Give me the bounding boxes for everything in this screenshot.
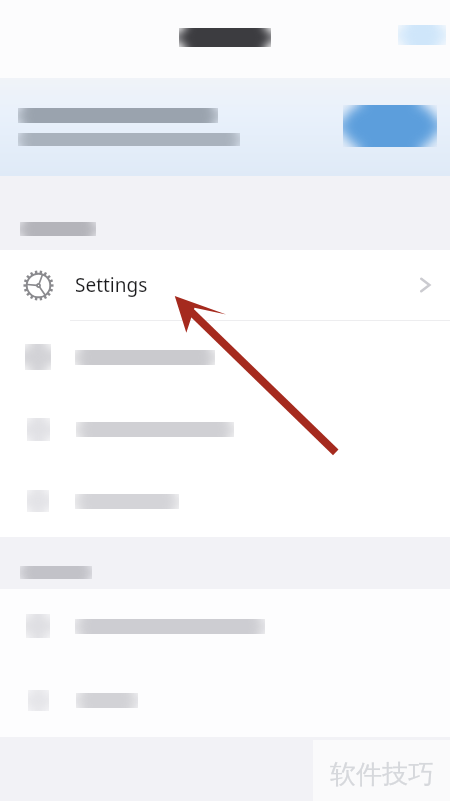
staticText: Settings (75, 272, 148, 298)
button[interactable] (0, 321, 450, 393)
button[interactable] (0, 465, 450, 537)
button[interactable] (0, 663, 450, 737)
button[interactable] (398, 25, 446, 45)
button[interactable] (0, 589, 450, 663)
button[interactable] (0, 393, 450, 465)
staticText: 软件技巧 (330, 758, 434, 791)
button[interactable] (343, 105, 437, 147)
button[interactable]: Settings (0, 250, 450, 320)
